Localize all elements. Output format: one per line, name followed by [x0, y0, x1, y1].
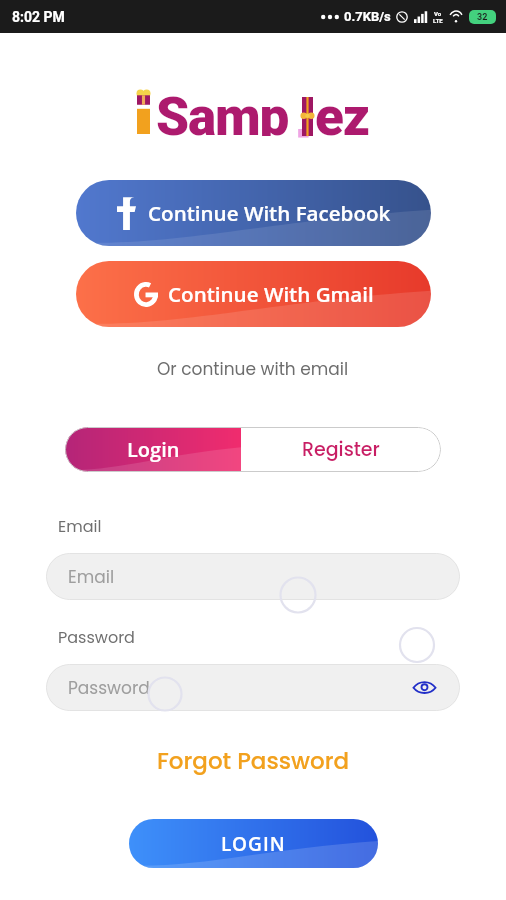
staticText: LTE — [433, 17, 443, 24]
staticText: Email — [58, 515, 102, 537]
button[interactable]: Email — [46, 553, 460, 600]
staticText: Or continue with email — [157, 357, 349, 381]
staticText: 8:02 PM — [12, 9, 65, 25]
staticText: Register — [302, 436, 380, 463]
staticText: Password — [58, 626, 135, 648]
button[interactable]: Forgot Password — [149, 741, 358, 781]
button[interactable]: Continue With Gmail — [76, 261, 431, 327]
button[interactable]: Show password — [413, 681, 436, 694]
staticText: Samp — [156, 86, 289, 136]
button[interactable]: Register — [241, 427, 441, 472]
staticText: LOGIN — [221, 831, 286, 857]
staticText: Continue With Facebook — [148, 199, 391, 227]
staticText: Email — [68, 565, 115, 589]
staticText: 0.7KB/s — [344, 9, 391, 24]
staticText: ez — [315, 86, 369, 136]
staticText: Login — [127, 436, 180, 463]
button[interactable]: Password — [46, 664, 460, 711]
button[interactable]: LOGIN — [129, 819, 378, 868]
staticText: 32 — [477, 12, 488, 23]
staticText: Continue With Gmail — [168, 280, 374, 308]
staticText: Password — [68, 676, 150, 700]
button[interactable]: Continue With Facebook — [76, 180, 431, 246]
button[interactable]: Login — [65, 427, 241, 472]
staticText: Vo — [434, 10, 442, 17]
